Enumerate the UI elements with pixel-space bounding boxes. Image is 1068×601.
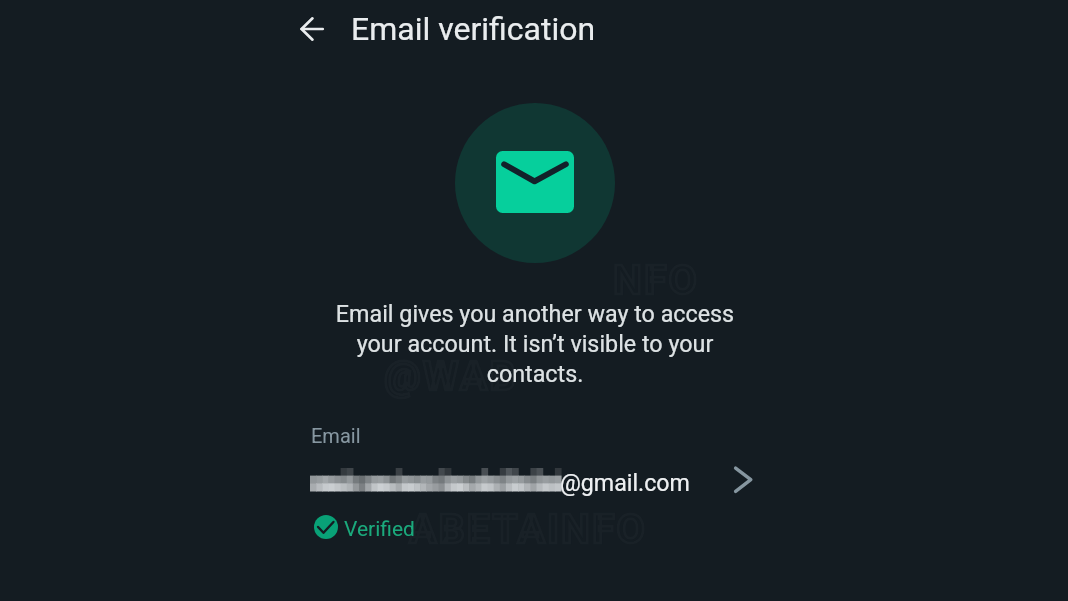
button[interactable]: Email	[300, 418, 760, 558]
button[interactable]: Back	[291, 7, 335, 51]
staticText: @gmail.com	[560, 469, 690, 496]
other: Open email	[726, 461, 758, 493]
staticText: Verified	[344, 517, 415, 542]
staticText: Email verification	[351, 10, 596, 48]
staticText: Email	[311, 424, 361, 447]
staticText: Email gives you another way to access yo…	[325, 300, 745, 387]
